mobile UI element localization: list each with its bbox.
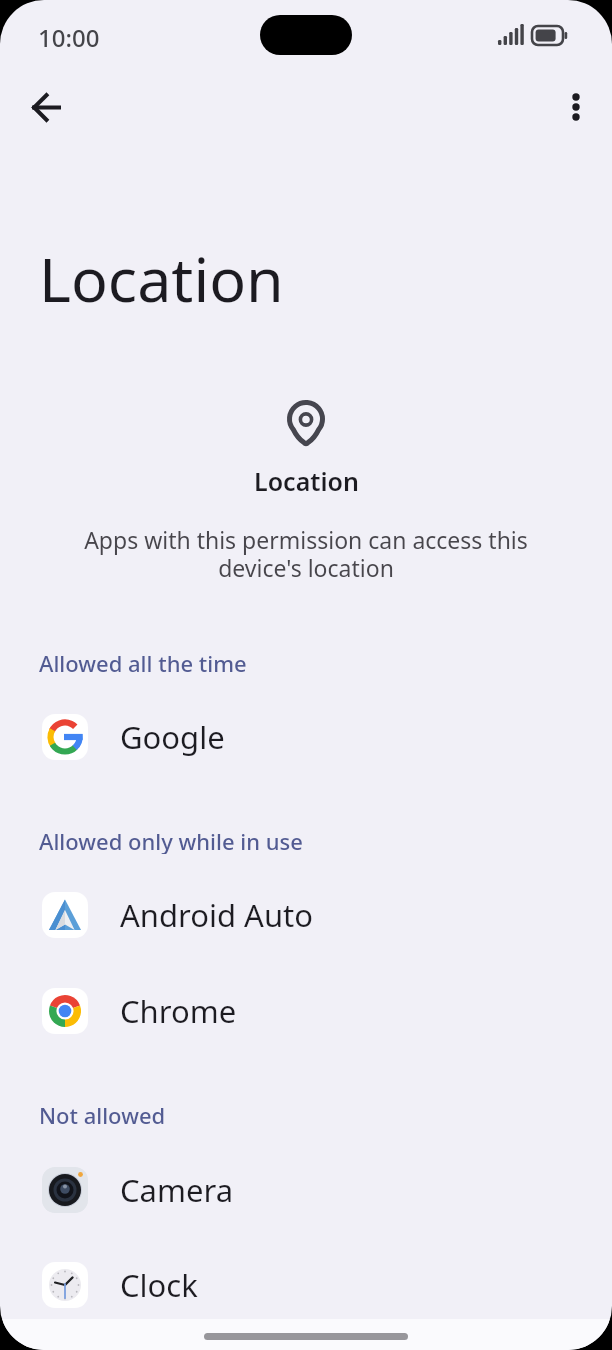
staticText: Not allowed <box>39 1100 166 1128</box>
staticText: Android Auto <box>120 894 314 936</box>
staticText: Google <box>120 716 225 758</box>
button[interactable] <box>23 84 69 130</box>
button[interactable]: Android Auto <box>0 868 612 962</box>
staticText: Location <box>39 237 284 320</box>
button[interactable] <box>553 84 599 130</box>
button[interactable]: Camera <box>0 1143 612 1237</box>
staticText: Location <box>254 464 359 492</box>
staticText: Allowed all the time <box>39 648 247 676</box>
staticText: Allowed only while in use <box>39 826 303 854</box>
staticText: 10:00 <box>38 21 100 51</box>
button[interactable]: Clock <box>0 1238 612 1332</box>
staticText: Clock <box>120 1264 198 1306</box>
button[interactable]: Chrome <box>0 964 612 1058</box>
staticText: Camera <box>120 1169 234 1211</box>
staticText: Apps with this permission can access thi… <box>84 524 528 584</box>
button[interactable]: Google <box>0 690 612 784</box>
staticText: Chrome <box>120 990 237 1032</box>
